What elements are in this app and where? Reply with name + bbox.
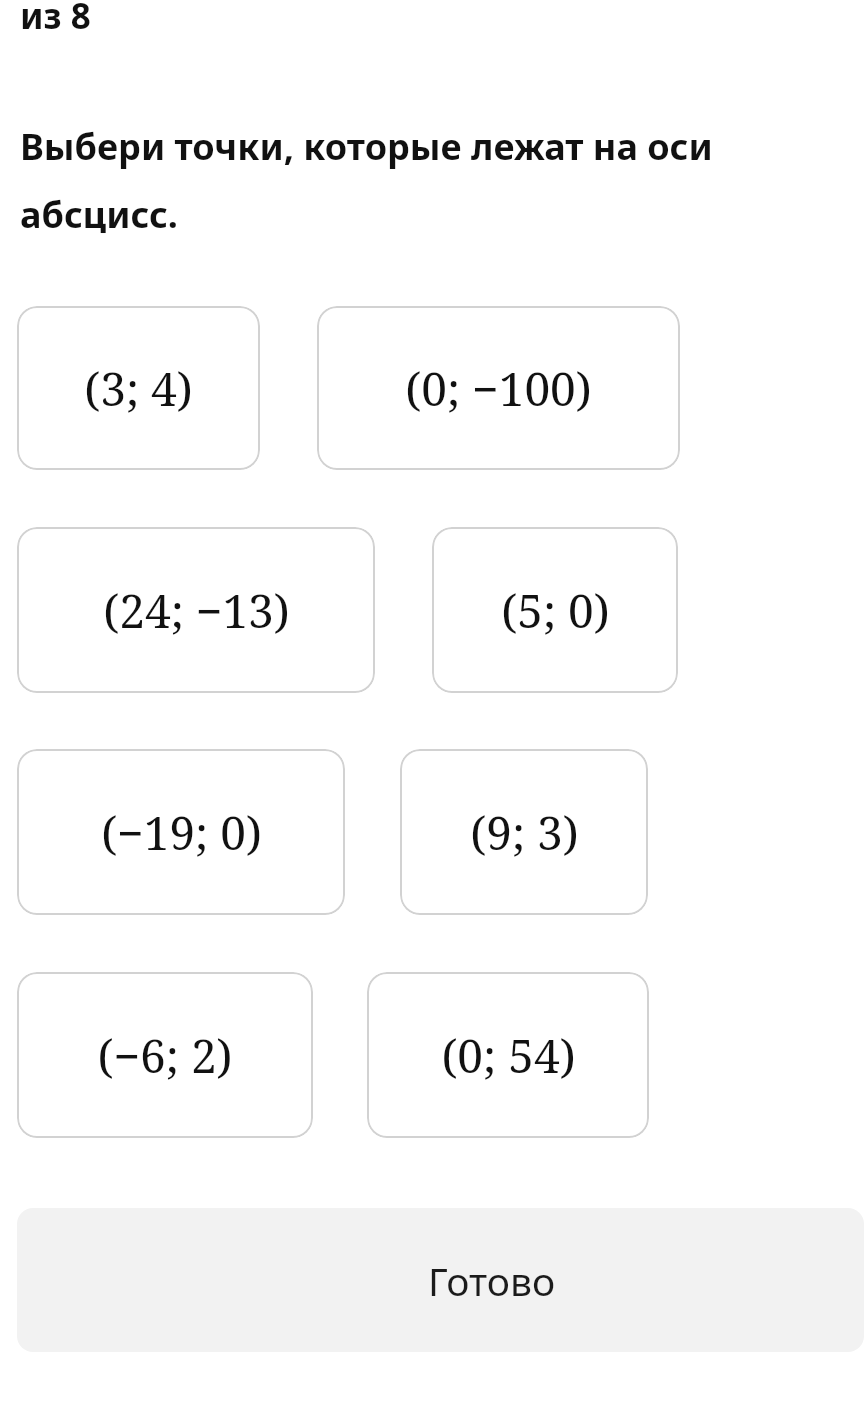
button[interactable]: (24; −13) bbox=[17, 527, 375, 693]
button[interactable]: (−19; 0) bbox=[17, 749, 345, 915]
button[interactable]: (3; 4) bbox=[17, 306, 260, 470]
staticText: (9; 3) bbox=[470, 801, 579, 864]
button[interactable]: (0; −100) bbox=[317, 306, 680, 470]
staticText: Выбери точки, которые лежат на оси абсци… bbox=[20, 122, 840, 239]
button[interactable]: Готово bbox=[17, 1208, 864, 1352]
staticText: (−19; 0) bbox=[101, 801, 262, 864]
button[interactable]: (5; 0) bbox=[432, 527, 678, 693]
staticText: (3; 4) bbox=[84, 357, 193, 420]
button[interactable]: (9; 3) bbox=[400, 749, 648, 915]
button[interactable]: (−6; 2) bbox=[17, 972, 313, 1138]
staticText: (24; −13) bbox=[103, 579, 290, 642]
staticText: (5; 0) bbox=[501, 579, 610, 642]
staticText: из 8 bbox=[20, 0, 91, 40]
staticText: (0; −100) bbox=[405, 357, 592, 420]
staticText: Готово bbox=[428, 1254, 556, 1307]
button[interactable]: (0; 54) bbox=[367, 972, 649, 1138]
staticText: (0; 54) bbox=[441, 1024, 576, 1087]
staticText: (−6; 2) bbox=[97, 1024, 233, 1087]
